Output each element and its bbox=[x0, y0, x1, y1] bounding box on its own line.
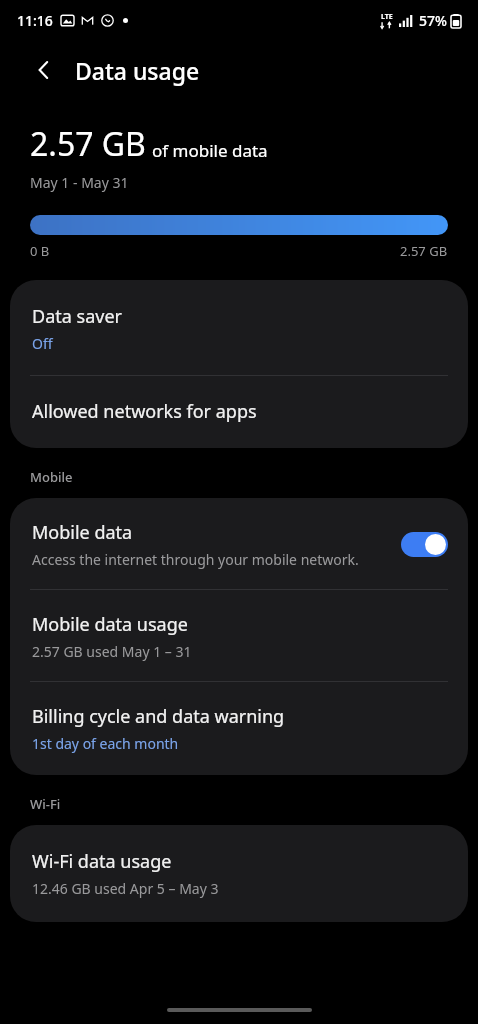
staticText: 11:16 bbox=[17, 11, 53, 30]
staticText: Data saver bbox=[32, 304, 122, 329]
staticText: Allowed networks for apps bbox=[32, 399, 257, 424]
staticText: of mobile data bbox=[152, 139, 268, 162]
staticText: Mobile data usage bbox=[32, 612, 188, 637]
button[interactable]: Allowed networks for apps bbox=[10, 376, 468, 448]
button[interactable]: Mobile data bbox=[10, 498, 468, 589]
staticText: Billing cycle and data warning bbox=[32, 704, 285, 729]
staticText: 2.57 GB bbox=[400, 242, 448, 260]
staticText: 0 B bbox=[30, 242, 50, 260]
staticText: Wi-Fi data usage bbox=[32, 849, 172, 874]
button[interactable]: Mobile data usage bbox=[10, 590, 468, 681]
button[interactable]: Billing cycle and data warning bbox=[10, 682, 468, 775]
button[interactable]: Data saver bbox=[10, 280, 468, 375]
staticText: 2.57 GB used May 1 – 31 bbox=[32, 642, 192, 661]
staticText: Data usage bbox=[75, 55, 200, 86]
staticText: 12.46 GB used Apr 5 – May 3 bbox=[32, 879, 219, 898]
staticText: 2.57 GB bbox=[30, 122, 146, 166]
staticText: Off bbox=[32, 334, 53, 353]
staticText: Mobile data bbox=[32, 520, 133, 545]
button[interactable]: Mobile data toggle, on bbox=[401, 532, 448, 557]
staticText: LTE bbox=[381, 12, 393, 22]
staticText: 57% bbox=[419, 11, 447, 30]
staticText: May 1 - May 31 bbox=[30, 173, 129, 192]
button[interactable]: Back bbox=[22, 48, 66, 92]
staticText: 1st day of each month bbox=[32, 734, 179, 753]
staticText: Wi-Fi bbox=[30, 795, 61, 813]
staticText: Mobile bbox=[30, 468, 73, 486]
button[interactable]: Wi-Fi data usage bbox=[10, 825, 468, 922]
staticText: Access the internet through your mobile … bbox=[32, 550, 359, 569]
